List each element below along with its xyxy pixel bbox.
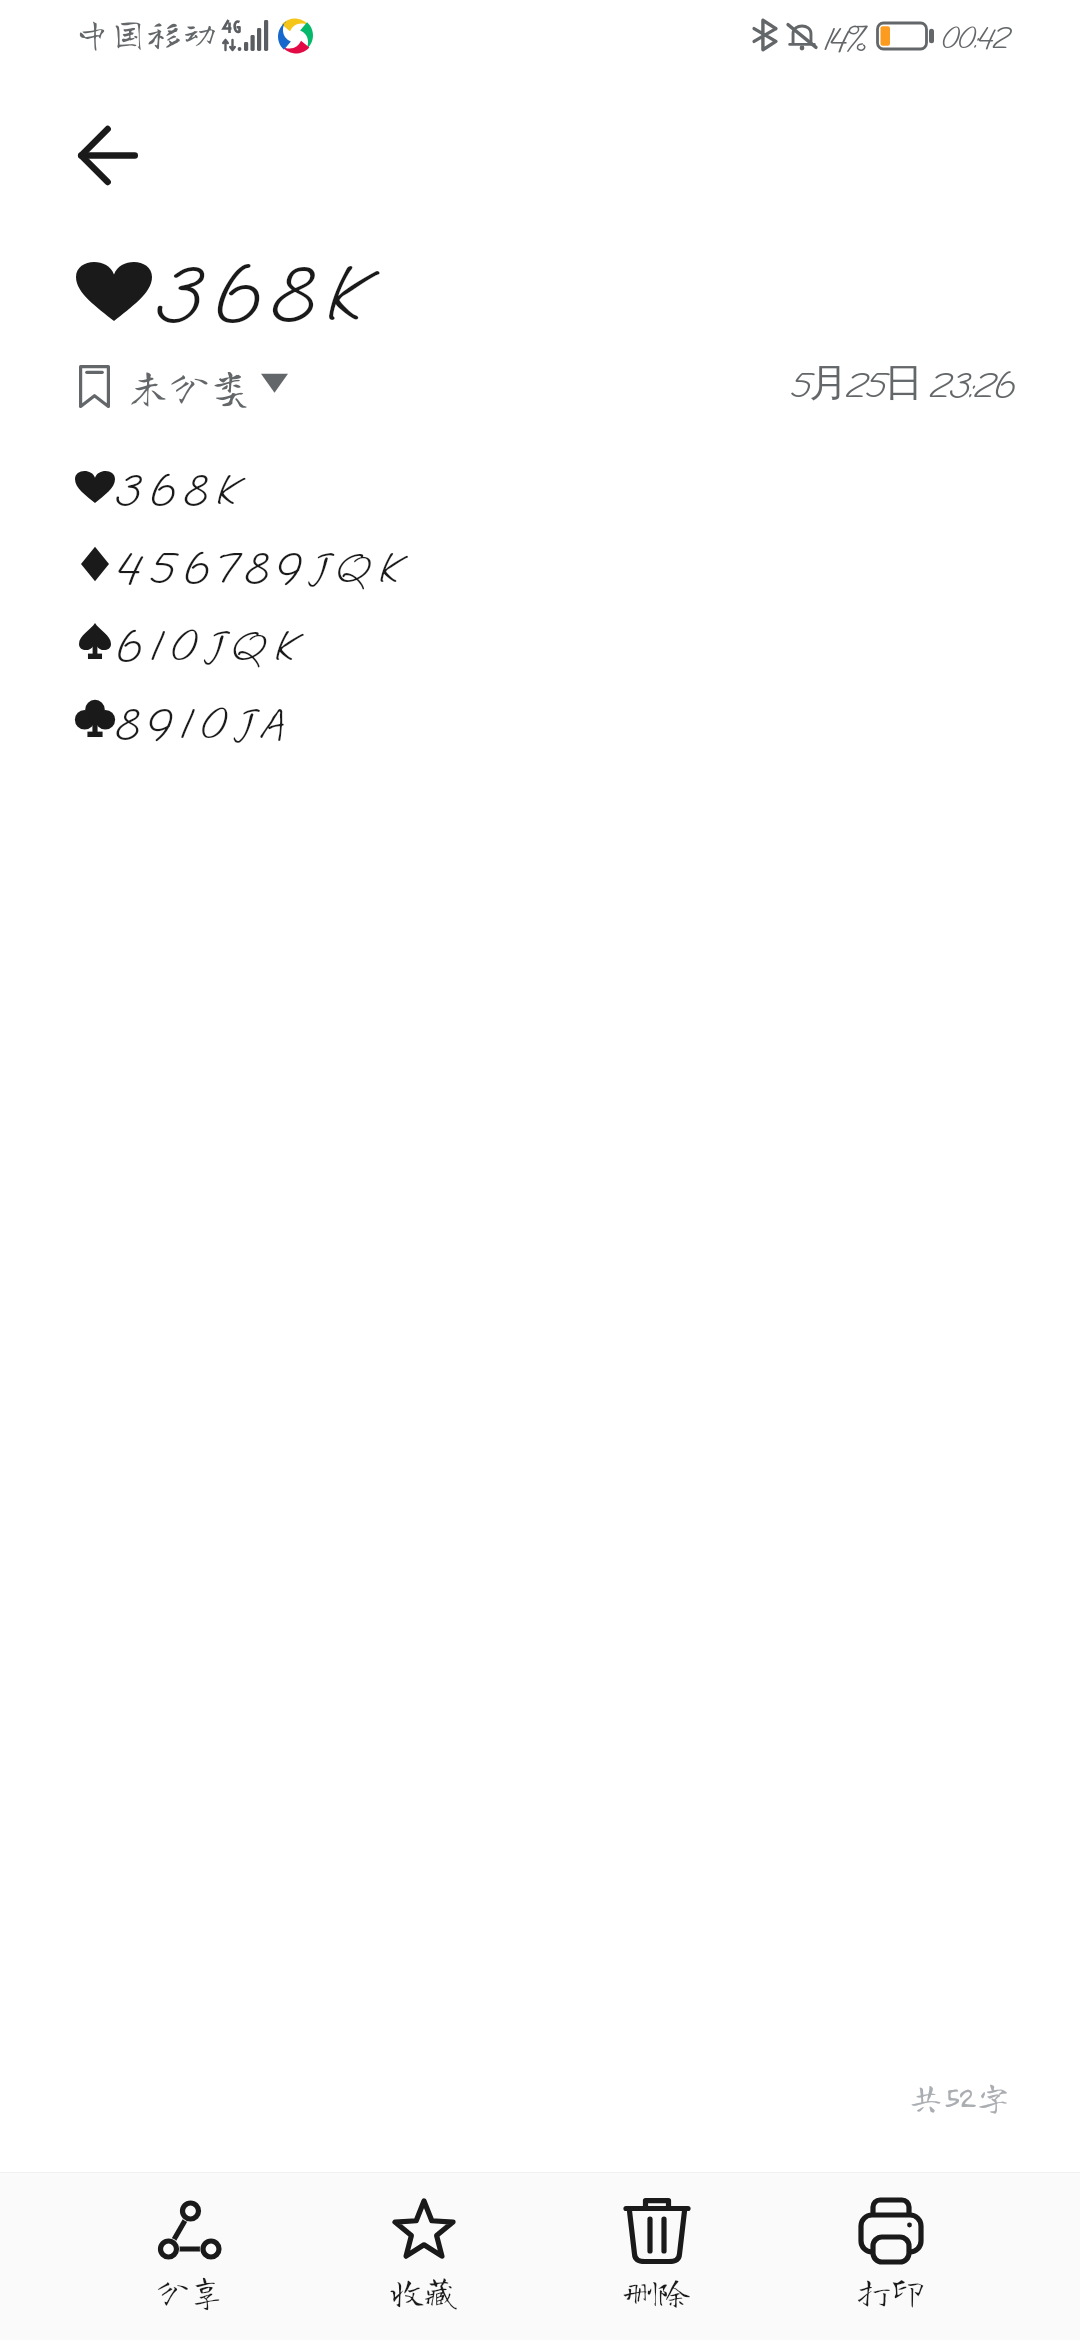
staticText: 5月25日 23:26 bbox=[790, 358, 1014, 408]
staticText: 8910JA bbox=[115, 695, 292, 753]
staticText: 368K bbox=[155, 241, 372, 346]
staticText: 收藏 bbox=[390, 2274, 458, 2308]
staticText: 分享 bbox=[156, 2274, 224, 2308]
button[interactable]: 收藏 bbox=[307, 2173, 540, 2340]
staticText: 删除 bbox=[623, 2274, 691, 2308]
staticText: 610JQK bbox=[115, 617, 302, 675]
staticText: 未分类 bbox=[128, 366, 251, 407]
button[interactable]: 打印 bbox=[774, 2173, 1007, 2340]
button[interactable]: Back bbox=[58, 106, 158, 206]
staticText: 14% bbox=[823, 17, 864, 61]
button[interactable]: 分享 bbox=[73, 2173, 306, 2340]
staticText: 中国移动 bbox=[74, 15, 219, 51]
staticText: 00:42 bbox=[941, 18, 1009, 57]
button[interactable]: 未分类 bbox=[79, 363, 288, 409]
button[interactable]: 删除 bbox=[540, 2173, 773, 2340]
staticText: 368K bbox=[115, 461, 244, 519]
staticText: 456789JQK bbox=[115, 539, 407, 597]
staticText: 打印 bbox=[857, 2274, 925, 2308]
staticText: 共​52​字 bbox=[908, 2078, 1012, 2114]
